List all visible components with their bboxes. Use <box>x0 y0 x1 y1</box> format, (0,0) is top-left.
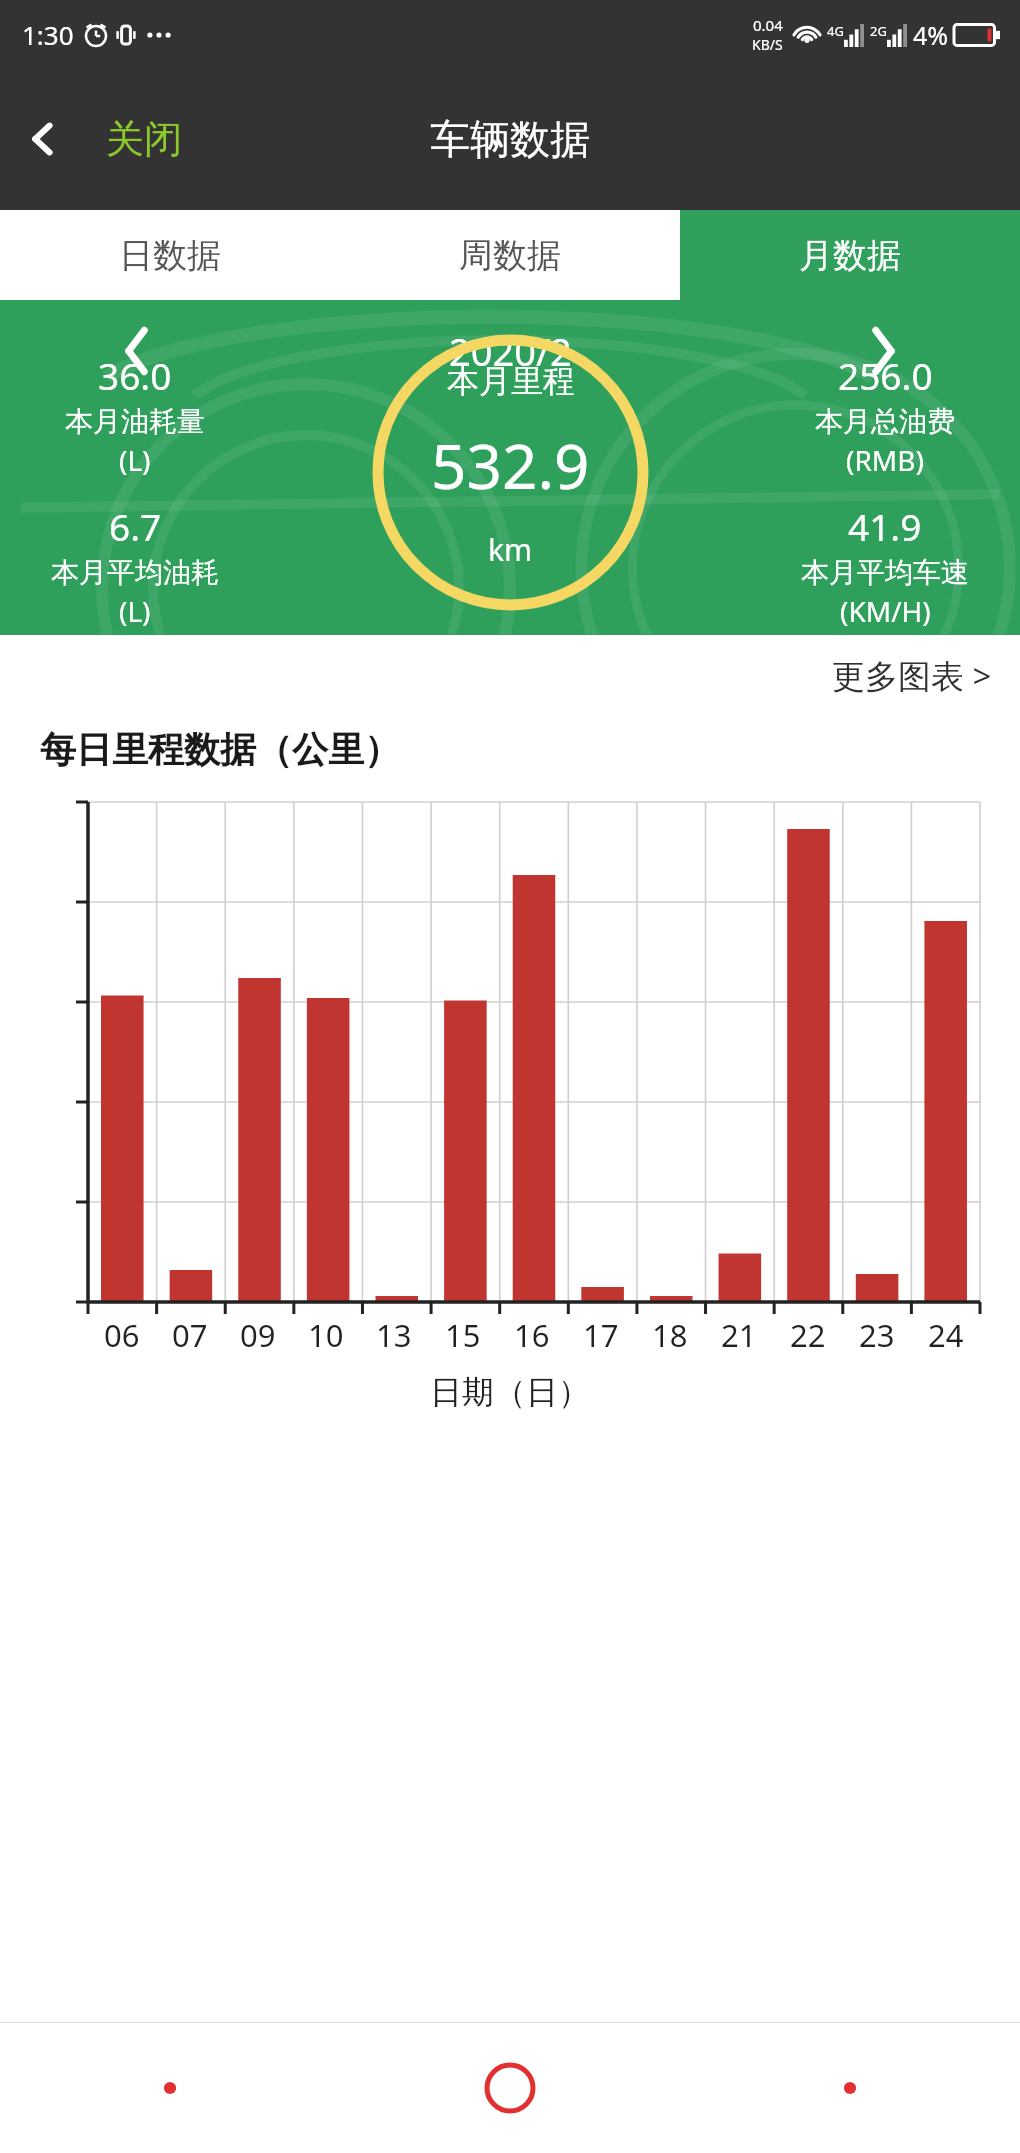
staticText: 车辆数据 <box>430 114 590 164</box>
staticText: 月数据 <box>799 234 901 277</box>
staticText: 13 <box>376 1314 412 1356</box>
button[interactable]: 更多图表 > <box>804 641 1020 710</box>
button[interactable]: 日数据 <box>0 210 340 300</box>
staticText: (L) <box>119 592 151 630</box>
button[interactable]: 周数据 <box>340 210 680 300</box>
staticText: 0.04 <box>753 15 783 35</box>
staticText: 1:30 <box>22 17 74 52</box>
staticText: (RMB) <box>846 441 924 479</box>
button[interactable]: Next month <box>856 314 910 388</box>
staticText: 2G <box>870 22 887 40</box>
staticText: 本月平均油耗 <box>51 555 219 590</box>
staticText: 07 <box>172 1314 208 1356</box>
staticText: 21 <box>721 1314 757 1356</box>
staticText: 0 <box>69 1301 88 1302</box>
staticText: 4G <box>827 22 844 40</box>
staticText: 15 <box>445 1314 481 1356</box>
staticText: 本月油耗量 <box>65 404 205 439</box>
staticText: KB/S <box>752 35 783 54</box>
staticText: 10 <box>308 1314 344 1356</box>
staticText: 16 <box>514 1314 550 1356</box>
staticText: 41.9 <box>848 501 922 551</box>
staticText: 24 <box>928 1314 964 1356</box>
staticText: 60 <box>51 999 88 1000</box>
staticText: (L) <box>119 441 151 479</box>
staticText: 532.9 <box>431 423 590 507</box>
staticText: 40 <box>51 1100 88 1101</box>
staticText: km <box>488 529 533 570</box>
staticText: 17 <box>583 1314 619 1356</box>
button[interactable]: Previous month <box>110 314 164 388</box>
staticText: 关闭 <box>106 115 182 163</box>
staticText: 256.0 <box>838 350 933 400</box>
staticText: 每日里程数据（公里） <box>40 727 400 772</box>
staticText: 23 <box>859 1314 895 1356</box>
button[interactable]: Back <box>0 101 72 177</box>
staticText: 09 <box>240 1314 276 1356</box>
button[interactable]: Recents <box>680 2023 1020 2153</box>
button[interactable]: 关闭 <box>96 105 192 173</box>
staticText: 36.0 <box>98 350 172 400</box>
staticText: 06 <box>104 1314 140 1356</box>
staticText: 本月里程 <box>447 361 575 401</box>
staticText: 日数据 <box>119 234 221 277</box>
staticText: (KM/H) <box>840 592 931 630</box>
staticText: 周数据 <box>459 234 561 277</box>
button[interactable]: 月数据 <box>680 210 1020 300</box>
staticText: 更多图表 > <box>832 653 992 698</box>
staticText: 20 <box>51 1200 88 1201</box>
staticText: 日期（日） <box>430 1372 590 1412</box>
staticText: 本月总油费 <box>815 404 955 439</box>
staticText: 本月平均车速 <box>801 555 969 590</box>
button[interactable]: Back <box>0 2023 340 2153</box>
staticText: 4% <box>913 18 949 52</box>
staticText: 6.7 <box>109 501 162 551</box>
button[interactable]: Home <box>340 2023 680 2153</box>
staticText: 80 <box>51 899 88 900</box>
staticText: 22 <box>790 1314 826 1356</box>
staticText: 18 <box>652 1314 688 1356</box>
staticText: 2020/2 <box>449 325 572 377</box>
